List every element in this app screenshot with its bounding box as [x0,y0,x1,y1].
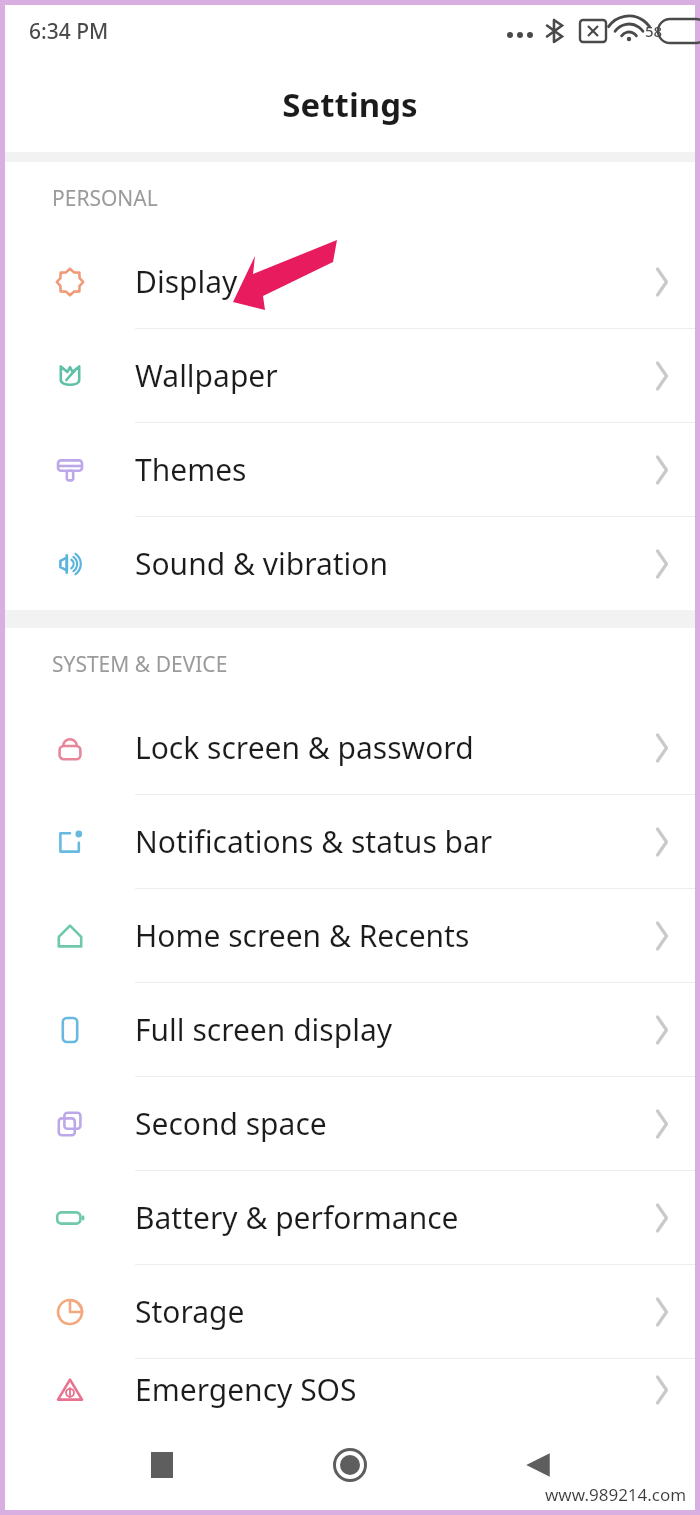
button[interactable]: Emergency SOS [5,1359,695,1420]
button[interactable]: Home [319,1434,381,1496]
staticText: Storage [135,1291,633,1332]
staticText: 58 [645,21,663,41]
staticText: Battery & performance [135,1197,633,1238]
button[interactable]: Back [507,1434,569,1496]
staticText: Wallpaper [135,355,633,396]
button[interactable]: Sound & vibration [5,517,695,610]
button[interactable]: Themes [5,423,695,516]
staticText: Lock screen & password [135,727,633,768]
button[interactable]: Second space [5,1077,695,1170]
staticText: www.989214.com [545,1483,687,1506]
staticText: Display [135,261,633,302]
button[interactable]: Home screen & Recents [5,889,695,982]
button[interactable]: Full screen display [5,983,695,1076]
staticText: Notifications & status bar [135,821,633,862]
staticText: Sound & vibration [135,543,633,584]
staticText: PERSONAL [52,184,158,213]
button[interactable]: Notifications & status bar [5,795,695,888]
button[interactable]: Wallpaper [5,329,695,422]
button[interactable]: Recents [131,1434,193,1496]
staticText: Emergency SOS [135,1369,633,1410]
staticText: Settings [282,82,418,127]
staticText: Home screen & Recents [135,915,633,956]
staticText: Second space [135,1103,633,1144]
staticText: Themes [135,449,633,490]
button[interactable]: Battery & performance [5,1171,695,1264]
button[interactable]: Lock screen & password [5,701,695,794]
button[interactable]: Storage [5,1265,695,1358]
staticText: 6:34 PM [29,17,109,46]
staticText: SYSTEM & DEVICE [52,650,228,679]
button[interactable]: Display [5,235,695,328]
staticText: Full screen display [135,1009,633,1050]
